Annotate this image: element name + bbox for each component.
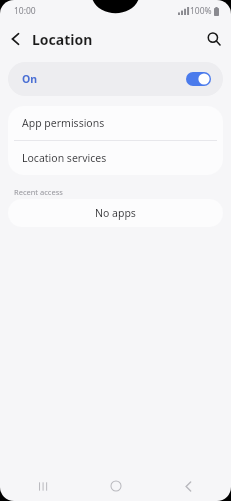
- button[interactable]: Search: [201, 26, 231, 52]
- staticText: Location: [32, 30, 93, 49]
- button[interactable]: App permissions: [8, 106, 223, 140]
- staticText: Recent access: [14, 187, 63, 197]
- button[interactable]: On: [8, 62, 223, 96]
- staticText: On: [22, 72, 38, 86]
- button[interactable]: Home: [86, 471, 146, 501]
- button[interactable]: Recents: [13, 471, 73, 501]
- staticText: 10:00: [14, 5, 36, 17]
- staticText: 100%: [190, 5, 212, 17]
- button[interactable]: Back: [0, 25, 25, 53]
- button[interactable]: Location services: [8, 141, 223, 175]
- staticText: Location services: [22, 151, 107, 165]
- button[interactable]: No apps: [8, 199, 223, 227]
- staticText: No apps: [95, 206, 136, 220]
- staticText: App permissions: [22, 116, 105, 130]
- button[interactable]: Back: [158, 471, 218, 501]
